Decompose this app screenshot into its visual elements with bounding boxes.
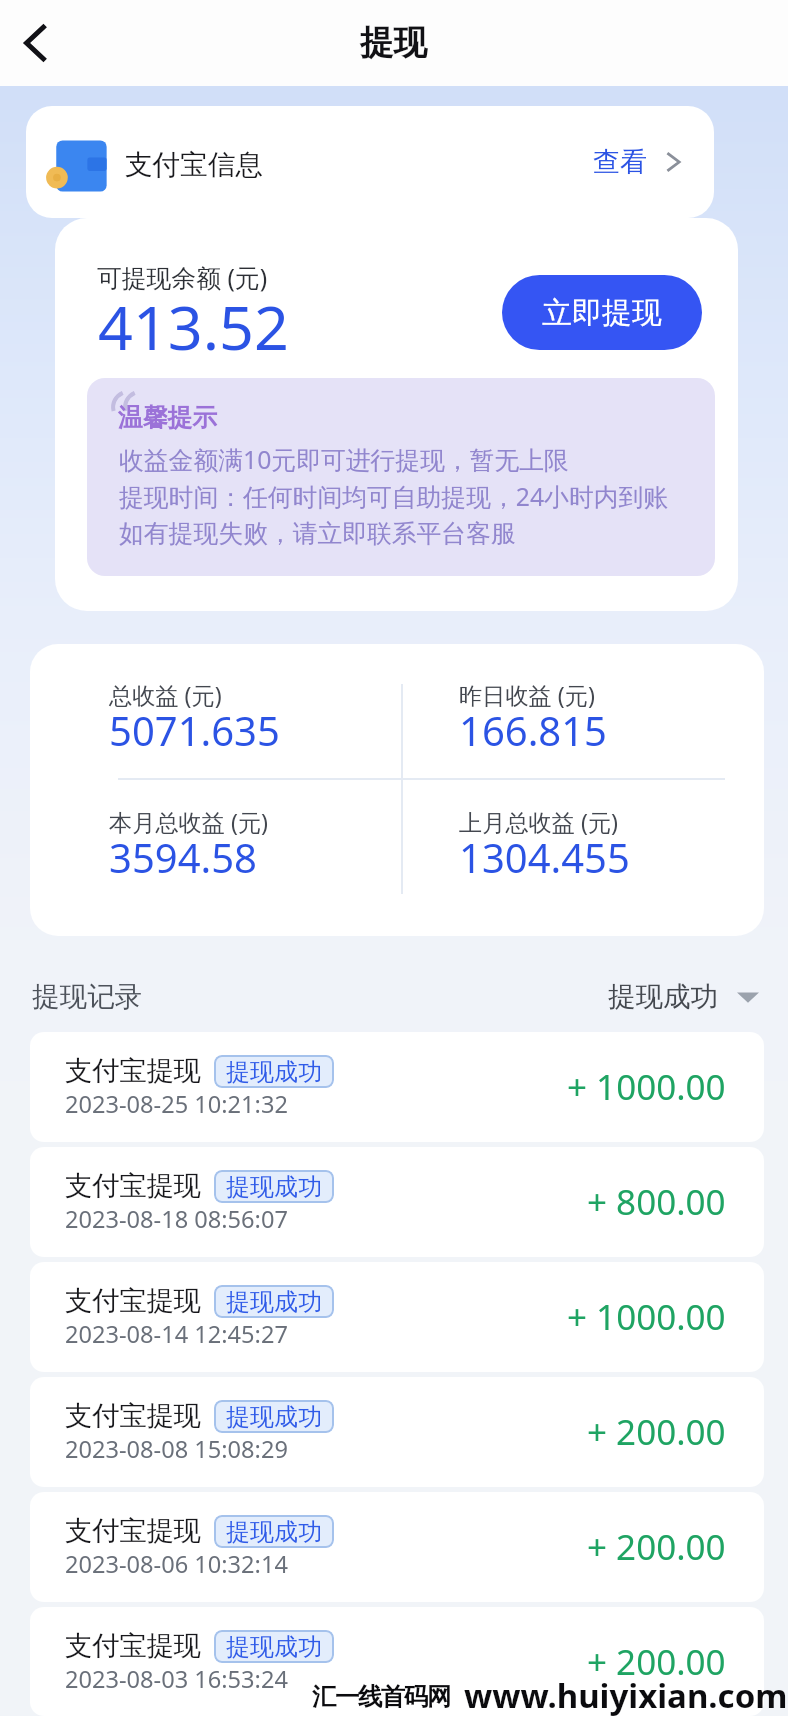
- staticText: 166.815: [459, 703, 607, 757]
- staticText: 提现成功: [226, 1172, 322, 1202]
- button[interactable]: 支付宝提现: [30, 1147, 764, 1257]
- staticText: 提现成功: [226, 1517, 322, 1547]
- staticText: 昨日收益 (元): [459, 679, 595, 711]
- staticText: 2023-08-03 16:53:24: [65, 1663, 288, 1695]
- staticText: 提现记录: [32, 979, 143, 1014]
- staticText: 汇一线首码网: [312, 1682, 450, 1713]
- staticText: 2023-08-14 12:45:27: [65, 1318, 288, 1350]
- staticText: 提现成功: [226, 1402, 322, 1432]
- staticText: 提现: [360, 22, 428, 64]
- staticText: 收益金额满10元即可进行提现，暂无上限 提现时间：任何时间均可自助提现，24小时…: [119, 442, 669, 549]
- staticText: 5071.635: [109, 703, 280, 757]
- staticText: 提现成功: [608, 979, 719, 1014]
- staticText: + 200.00: [587, 1523, 726, 1571]
- button[interactable]: 支付宝提现: [30, 1032, 764, 1142]
- staticText: + 1000.00: [567, 1063, 726, 1111]
- button[interactable]: 提现成功: [608, 979, 759, 1014]
- staticText: 上月总收益 (元): [459, 806, 619, 838]
- staticText: 可提现余额 (元): [97, 260, 268, 294]
- staticText: 413.52: [98, 285, 289, 368]
- staticText: + 1000.00: [567, 1293, 726, 1341]
- staticText: + 800.00: [587, 1178, 726, 1226]
- staticText: 支付宝提现: [65, 1169, 201, 1203]
- staticText: 支付宝提现: [65, 1054, 201, 1088]
- staticText: 查看: [593, 145, 647, 179]
- staticText: 提现成功: [226, 1632, 322, 1662]
- staticText: + 200.00: [587, 1408, 726, 1456]
- button[interactable]: 立即提现: [502, 275, 702, 350]
- staticText: 2023-08-18 08:56:07: [65, 1203, 288, 1235]
- staticText: 2023-08-08 15:08:29: [65, 1433, 288, 1465]
- staticText: 支付宝提现: [65, 1514, 201, 1548]
- staticText: 2023-08-25 10:21:32: [65, 1088, 288, 1120]
- button[interactable]: 支付宝提现: [30, 1492, 764, 1602]
- staticText: 2023-08-06 10:32:14: [65, 1548, 288, 1580]
- staticText: 温馨提示: [118, 402, 218, 433]
- staticText: 支付宝提现: [65, 1399, 201, 1433]
- button[interactable]: 支付宝提现: [30, 1377, 764, 1487]
- staticText: 1304.455: [459, 830, 630, 884]
- staticText: 支付宝提现: [65, 1284, 201, 1318]
- button[interactable]: 支付宝提现: [30, 1607, 764, 1716]
- staticText: www.huiyixian.com: [464, 1673, 788, 1716]
- staticText: 3594.58: [109, 830, 257, 884]
- staticText: 支付宝信息: [125, 147, 263, 182]
- staticText: 总收益 (元): [109, 679, 222, 711]
- staticText: + 200.00: [587, 1638, 726, 1686]
- staticText: 本月总收益 (元): [109, 806, 269, 838]
- staticText: 提现成功: [226, 1287, 322, 1317]
- button[interactable]: Back: [3, 12, 65, 74]
- staticText: 立即提现: [542, 294, 662, 332]
- staticText: 提现成功: [226, 1057, 322, 1087]
- button[interactable]: 支付宝提现: [30, 1262, 764, 1372]
- button[interactable]: 支付宝信息: [26, 106, 714, 218]
- staticText: 支付宝提现: [65, 1629, 201, 1663]
